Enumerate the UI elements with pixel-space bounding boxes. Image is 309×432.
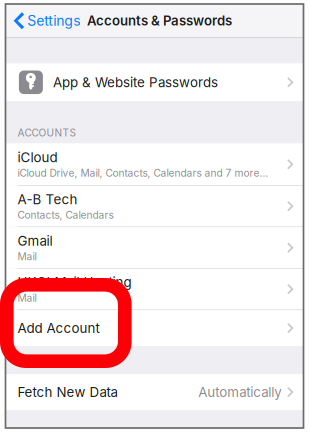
staticText: UKCI Mail Hosting — [17, 274, 131, 290]
staticText: Gmail — [17, 233, 52, 249]
button[interactable]: Settings — [5, 4, 87, 37]
button[interactable]: Gmail — [5, 227, 303, 268]
staticText: App & Website Passwords — [53, 74, 218, 90]
staticText: iCloud — [17, 149, 57, 165]
staticText: Fetch New Data — [17, 384, 117, 400]
staticText: Settings — [27, 12, 80, 29]
button[interactable]: iCloud — [5, 143, 303, 185]
staticText: Add Account — [17, 320, 99, 336]
button[interactable]: A-B Tech — [5, 186, 303, 226]
staticText: iCloud Drive, Mail, Contacts, Calendars … — [17, 167, 268, 179]
button[interactable]: Add Account — [5, 310, 303, 346]
button[interactable]: UKCI Mail Hosting — [5, 269, 303, 309]
staticText: A-B Tech — [17, 191, 77, 207]
staticText: Contacts, Calendars — [17, 209, 113, 221]
staticText: Accounts & Passwords — [87, 13, 232, 29]
staticText: Automatically — [198, 384, 281, 400]
staticText: Mail — [17, 292, 36, 304]
button[interactable]: Fetch New Data — [5, 374, 303, 410]
button[interactable]: App & Website Passwords — [5, 63, 303, 101]
staticText: ACCOUNTS — [17, 127, 76, 139]
staticText: Mail — [17, 250, 36, 263]
